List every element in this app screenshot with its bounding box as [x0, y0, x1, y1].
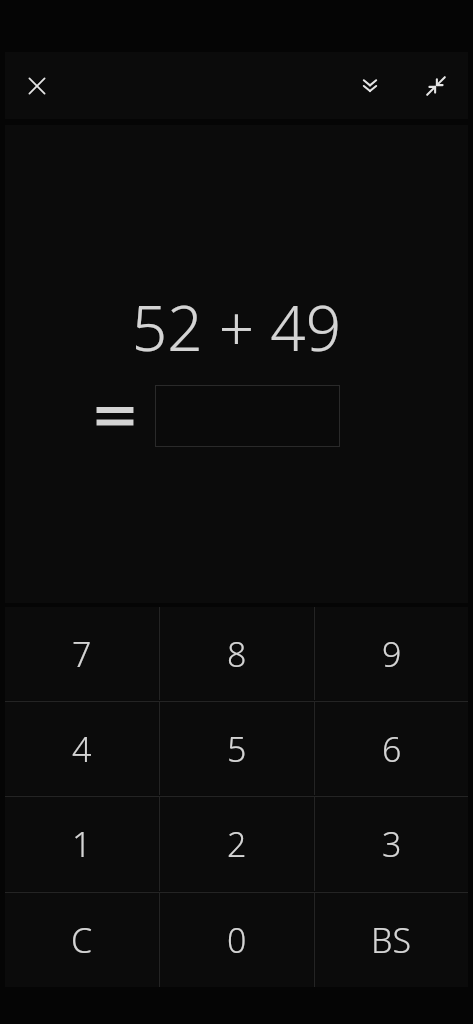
button[interactable]: 4: [5, 702, 158, 795]
button[interactable]: Collapse: [412, 62, 460, 110]
button[interactable]: 2: [160, 797, 313, 891]
button[interactable]: 6: [315, 702, 468, 795]
button[interactable]: 3: [315, 797, 468, 891]
button[interactable]: 9: [315, 607, 468, 700]
button[interactable]: 5: [160, 702, 313, 795]
button[interactable]: Close: [13, 62, 61, 110]
staticText: 7: [72, 631, 92, 677]
staticText: 52 + 49: [5, 285, 468, 369]
staticText: 0: [227, 917, 247, 963]
button[interactable]: Hide keyboard: [346, 62, 394, 110]
staticText: 1: [72, 821, 92, 867]
staticText: BS: [371, 917, 412, 963]
button[interactable]: C: [5, 893, 158, 987]
staticText: 5: [227, 726, 247, 772]
staticText: 3: [382, 821, 402, 867]
button[interactable]: [155, 385, 340, 447]
staticText: 2: [227, 821, 247, 867]
button[interactable]: 1: [5, 797, 158, 891]
button[interactable]: 0: [160, 893, 313, 987]
staticText: 4: [72, 726, 92, 772]
staticText: 8: [227, 631, 247, 677]
staticText: 6: [382, 726, 402, 772]
staticText: C: [71, 917, 93, 963]
button[interactable]: 7: [5, 607, 158, 700]
button[interactable]: 8: [160, 607, 313, 700]
button[interactable]: BS: [315, 893, 468, 987]
staticText: 9: [382, 631, 402, 677]
